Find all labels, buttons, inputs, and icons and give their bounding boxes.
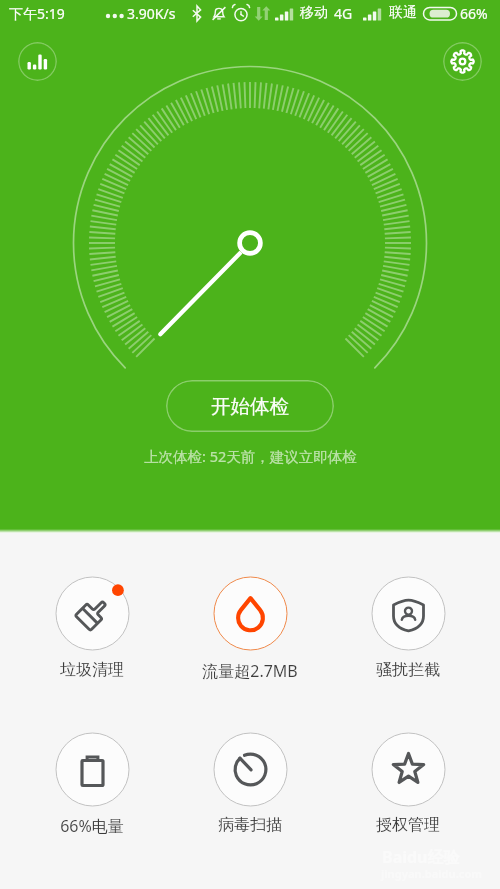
- staticText: 4G: [334, 4, 353, 23]
- staticText: 下午5:19: [9, 4, 65, 23]
- staticText: 垃圾清理: [60, 660, 124, 680]
- staticText: 流量超2.7MB: [202, 660, 298, 682]
- staticText: 上次体检: 52天前，建议立即体检: [144, 446, 357, 466]
- button[interactable]: 授权管理: [364, 725, 453, 814]
- button[interactable]: Settings: [443, 42, 482, 81]
- staticText: 联通: [389, 4, 417, 22]
- button[interactable]: 流量超2.7MB: [206, 569, 295, 658]
- staticText: 开始体检: [211, 394, 289, 419]
- staticText: 66%: [460, 4, 488, 23]
- button[interactable]: Statistics: [18, 42, 57, 81]
- staticText: 3.90K/s: [127, 4, 176, 23]
- button[interactable]: 开始体检: [166, 380, 334, 432]
- button[interactable]: 骚扰拦截: [364, 569, 453, 658]
- staticText: 66%电量: [60, 815, 124, 837]
- button[interactable]: 垃圾清理: [48, 569, 137, 658]
- button[interactable]: 病毒扫描: [206, 725, 295, 814]
- staticText: 病毒扫描: [218, 815, 282, 835]
- staticText: 移动: [300, 4, 328, 22]
- button[interactable]: 66%电量: [48, 725, 137, 814]
- staticText: 授权管理: [376, 815, 440, 835]
- staticText: 骚扰拦截: [376, 660, 440, 680]
